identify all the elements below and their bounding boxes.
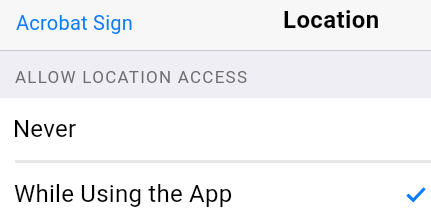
staticText: Location [283, 6, 380, 34]
button[interactable]: While Using the App [0, 163, 431, 216]
staticText: Acrobat Sign [16, 11, 134, 34]
button[interactable]: Acrobat Sign [0, 0, 146, 46]
staticText: While Using the App [14, 180, 233, 208]
staticText: Never [13, 115, 77, 143]
button[interactable]: Never [0, 98, 431, 163]
staticText: ALLOW LOCATION ACCESS [15, 67, 249, 87]
other: Selected [405, 180, 427, 202]
